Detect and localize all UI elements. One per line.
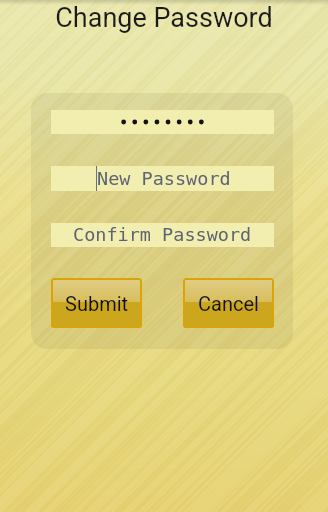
staticText: Cancel	[198, 292, 259, 315]
button[interactable]: Cancel	[183, 278, 274, 328]
staticText: Change Password	[0, 2, 328, 34]
button[interactable]: Confirm Password	[51, 223, 274, 247]
staticText: New Password	[97, 168, 231, 190]
button[interactable]	[51, 110, 274, 134]
button[interactable]: New Password	[51, 166, 274, 191]
staticText: Confirm Password	[73, 224, 252, 246]
staticText: Submit	[65, 292, 129, 315]
button[interactable]: Submit	[51, 278, 142, 328]
